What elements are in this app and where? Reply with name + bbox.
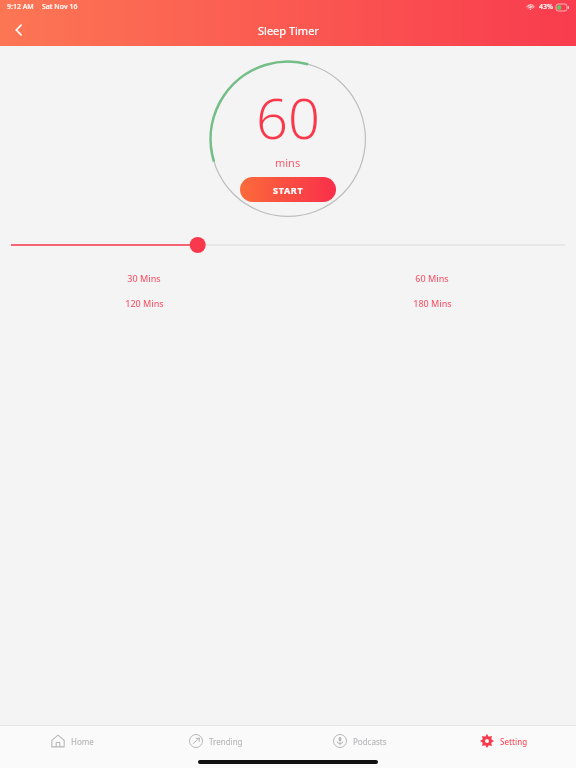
staticText: 60 Mins xyxy=(415,272,449,284)
staticText: 180 Mins xyxy=(413,297,452,309)
staticText: 9:12 AM xyxy=(7,2,34,12)
staticText: START xyxy=(273,184,304,196)
staticText: mins xyxy=(275,155,301,170)
button[interactable]: Trending xyxy=(144,734,288,748)
button[interactable]: Back xyxy=(0,14,38,46)
button[interactable]: Sleep duration slider xyxy=(0,235,576,255)
button[interactable]: Home xyxy=(0,734,144,748)
button[interactable]: Podcasts xyxy=(288,734,432,748)
staticText: Home xyxy=(71,736,94,747)
staticText: 60 xyxy=(256,79,320,155)
staticText: Setting xyxy=(500,736,528,747)
button[interactable]: 120 Mins xyxy=(0,296,288,310)
staticText: 120 Mins xyxy=(125,297,164,309)
staticText: Trending xyxy=(209,736,243,747)
staticText: Podcasts xyxy=(353,736,387,747)
button[interactable]: Setting xyxy=(432,734,576,748)
button[interactable]: START xyxy=(240,177,336,202)
staticText: 43% xyxy=(539,2,553,12)
button[interactable]: 60 Mins xyxy=(288,271,576,285)
button[interactable]: 30 Mins xyxy=(0,271,288,285)
staticText: Sat Nov 16 xyxy=(42,2,78,12)
button[interactable]: 180 Mins xyxy=(288,296,576,310)
staticText: Sleep Timer xyxy=(258,23,319,38)
staticText: 30 Mins xyxy=(127,272,161,284)
